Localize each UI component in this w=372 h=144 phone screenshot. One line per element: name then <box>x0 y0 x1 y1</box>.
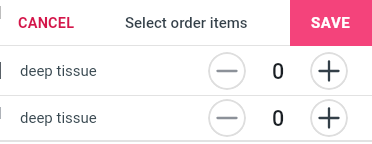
staticText: deep tissue <box>20 109 97 127</box>
staticText: 0 <box>272 59 285 84</box>
staticText: 0 <box>272 106 285 131</box>
staticText: Select order items <box>125 14 248 32</box>
staticText: deep tissue <box>20 62 97 80</box>
staticText: CANCEL <box>18 15 75 32</box>
staticText: SAVE <box>311 14 351 32</box>
